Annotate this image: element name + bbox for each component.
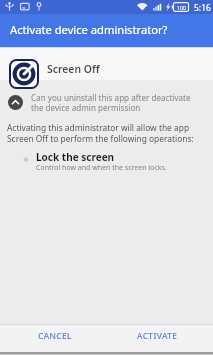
staticText: Screen Off (47, 62, 100, 76)
button[interactable]: ACTIVATE (129, 324, 185, 346)
button[interactable]: CANCEL (30, 324, 79, 346)
staticText: CANCEL (38, 330, 72, 341)
staticText: ACTIVATE (137, 330, 178, 341)
staticText: 5:16 (194, 2, 211, 14)
staticText: Activate device administrator? (10, 22, 168, 37)
button[interactable] (8, 95, 23, 110)
staticText: Activating this administrator will allow… (7, 122, 194, 144)
button[interactable] (9, 59, 39, 89)
staticText: Lock the screen (36, 150, 115, 164)
staticText: Control how and when the screen locks. (36, 163, 167, 173)
staticText: 100 (177, 4, 186, 11)
staticText: Can you uninstall this app after deactiv… (31, 92, 191, 114)
